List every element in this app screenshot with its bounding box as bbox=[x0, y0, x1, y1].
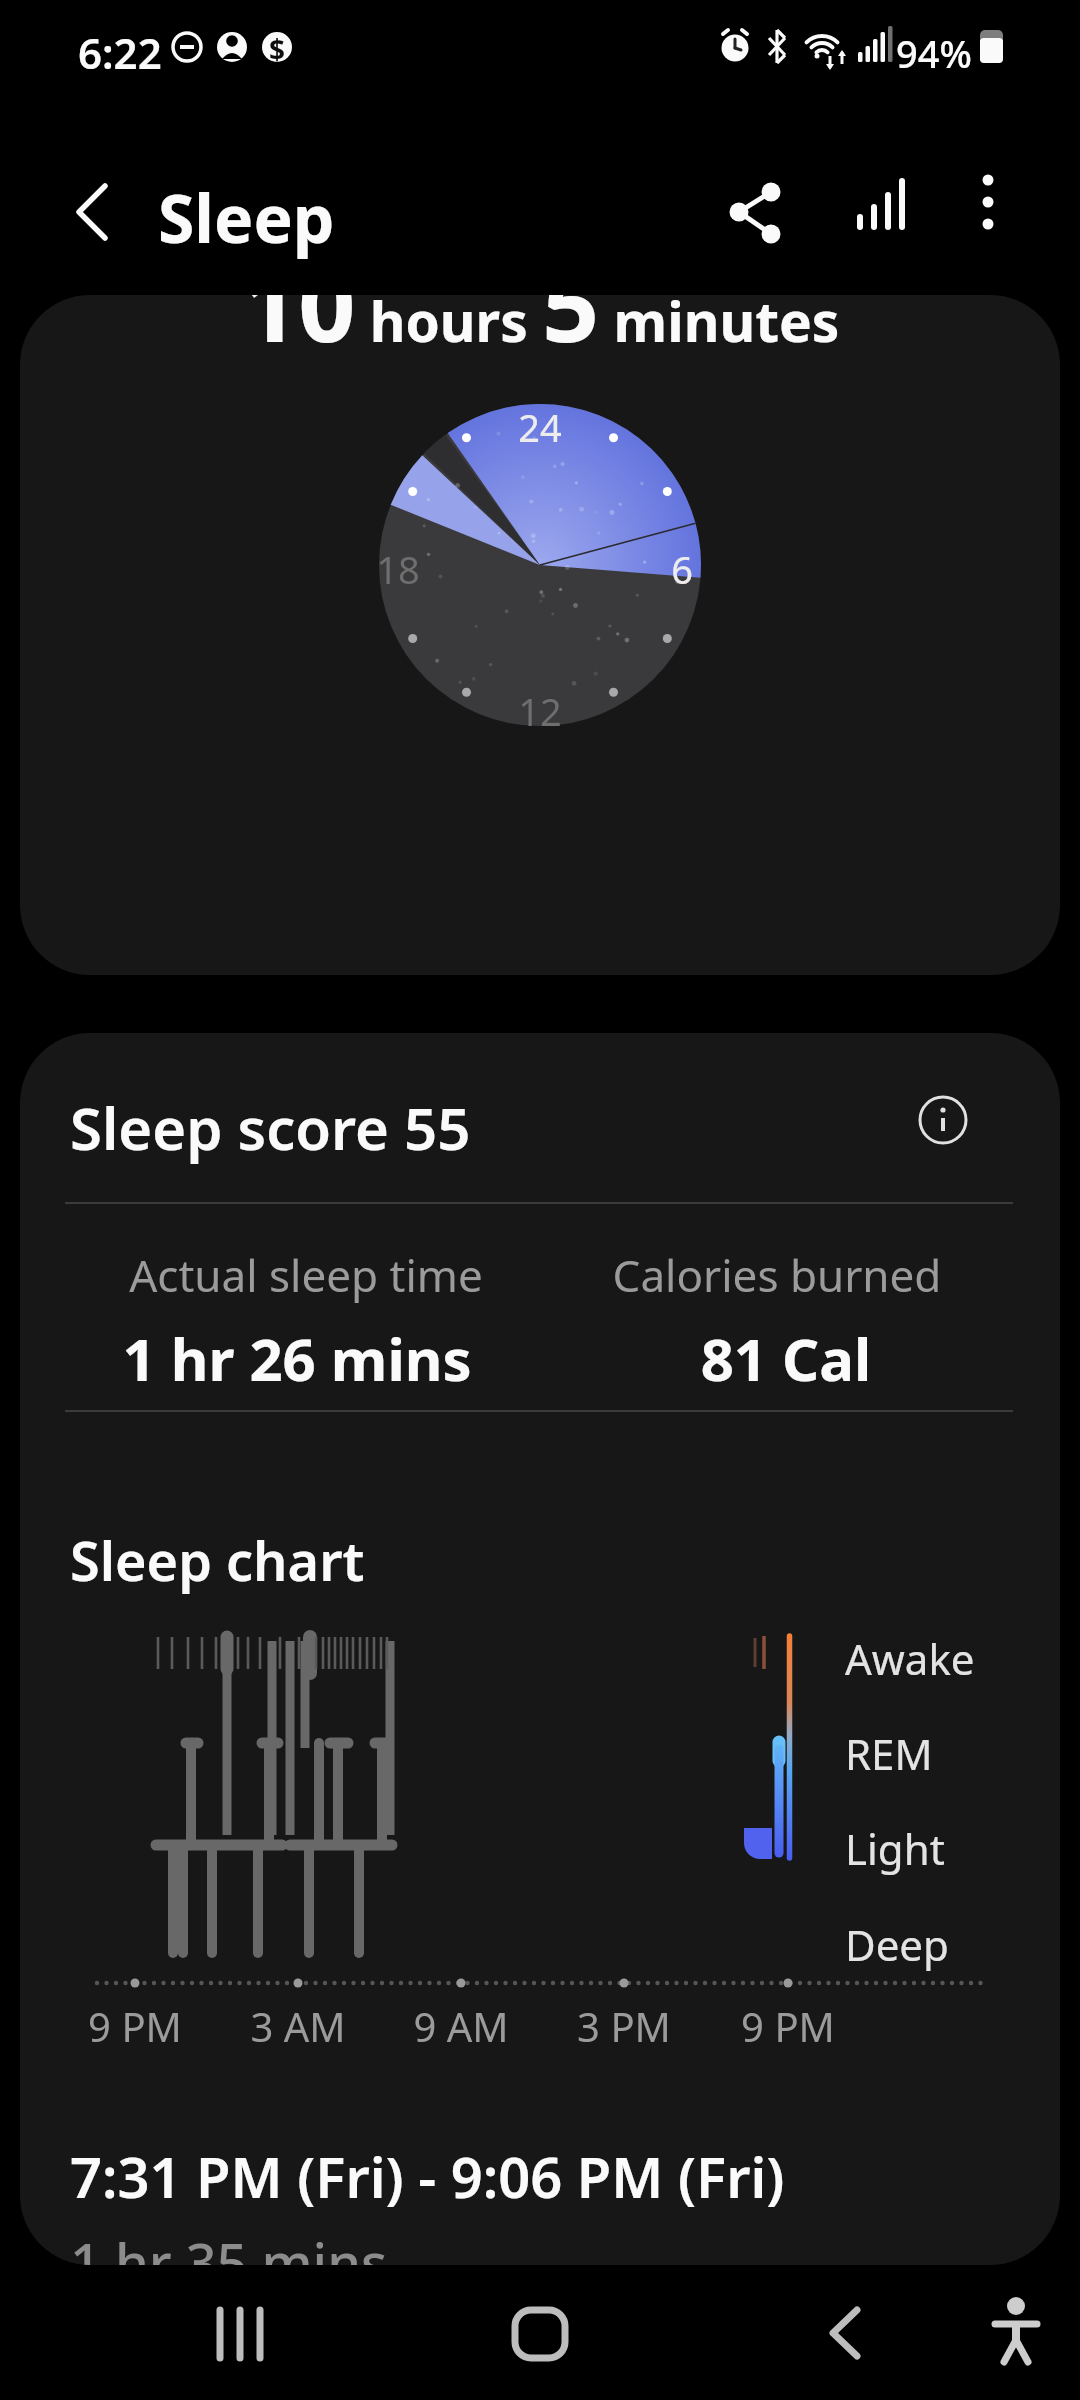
staticText: 6 bbox=[652, 543, 712, 595]
staticText: 6:22 bbox=[78, 24, 162, 81]
staticText: Calories burned bbox=[557, 1245, 997, 1305]
button[interactable] bbox=[910, 1088, 976, 1154]
staticText: 7:31 PM (Fri) - 9:06 PM (Fri) bbox=[70, 2138, 785, 2214]
staticText: Sleep bbox=[158, 172, 335, 262]
button[interactable] bbox=[966, 2284, 1066, 2384]
staticText: $ bbox=[269, 30, 286, 68]
staticText: 94% bbox=[896, 27, 972, 79]
staticText: 3 PM bbox=[564, 1999, 684, 2053]
button[interactable]: 10 hours 5 minutes bbox=[20, 295, 1060, 975]
staticText: 9 AM bbox=[401, 1999, 521, 2053]
button[interactable] bbox=[840, 172, 920, 252]
staticText: Actual sleep time bbox=[86, 1245, 526, 1305]
button[interactable] bbox=[190, 2284, 290, 2384]
staticText: Light bbox=[845, 1820, 945, 1877]
staticText: 24 bbox=[510, 401, 570, 453]
button[interactable] bbox=[55, 182, 115, 242]
staticText: 9 PM bbox=[728, 1999, 848, 2053]
staticText: 1 hr 26 mins bbox=[77, 1319, 517, 1398]
staticText: Awake bbox=[845, 1630, 975, 1687]
button[interactable] bbox=[950, 172, 1026, 248]
staticText: 1 hr 35 mins bbox=[70, 2225, 388, 2265]
staticText: 81 Cal bbox=[566, 1319, 1006, 1398]
staticText: 3 AM bbox=[238, 1999, 358, 2053]
staticText: 10 hours 5 minutes bbox=[241, 295, 840, 371]
staticText: Sleep score 55 bbox=[70, 1088, 471, 1167]
button[interactable] bbox=[795, 2284, 895, 2384]
staticText: 9 PM bbox=[75, 1999, 195, 2053]
staticText: Sleep chart bbox=[70, 1523, 365, 1597]
staticText: Deep bbox=[845, 1916, 949, 1973]
staticText: REM bbox=[845, 1725, 933, 1782]
staticText: 12 bbox=[510, 685, 570, 737]
button[interactable] bbox=[490, 2284, 590, 2384]
button[interactable] bbox=[715, 172, 795, 252]
staticText: 18 bbox=[368, 543, 428, 595]
